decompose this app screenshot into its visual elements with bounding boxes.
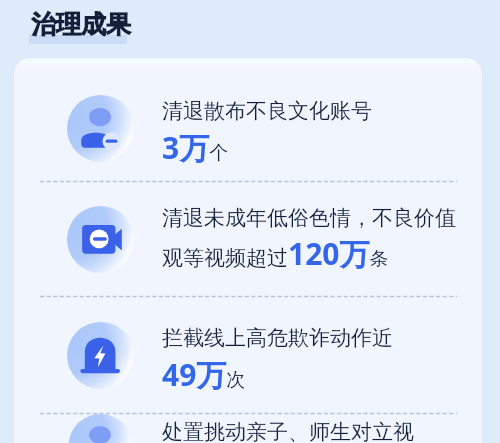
staticText: 3万个 xyxy=(162,127,229,168)
staticText: 处置挑动亲子、师生对立视 xyxy=(162,419,414,443)
staticText: 49万次 xyxy=(162,354,246,395)
button[interactable]: 拦截线上高危欺诈动作近 xyxy=(14,297,482,413)
button[interactable]: 清退散布不良文化账号 xyxy=(14,75,482,181)
staticText: 清退未成年低俗色情，不良价值观等视频超过120万条 xyxy=(162,205,462,274)
staticText: 拦截线上高危欺诈动作近 xyxy=(162,325,393,351)
staticText: 清退散布不良文化账号 xyxy=(162,98,372,124)
staticText: 治理成果 xyxy=(31,9,131,40)
button[interactable]: 处置挑动亲子、师生对立视 xyxy=(14,414,482,443)
button[interactable]: 清退未成年低俗色情，不良价值观等视频超过120万条 xyxy=(14,182,482,296)
